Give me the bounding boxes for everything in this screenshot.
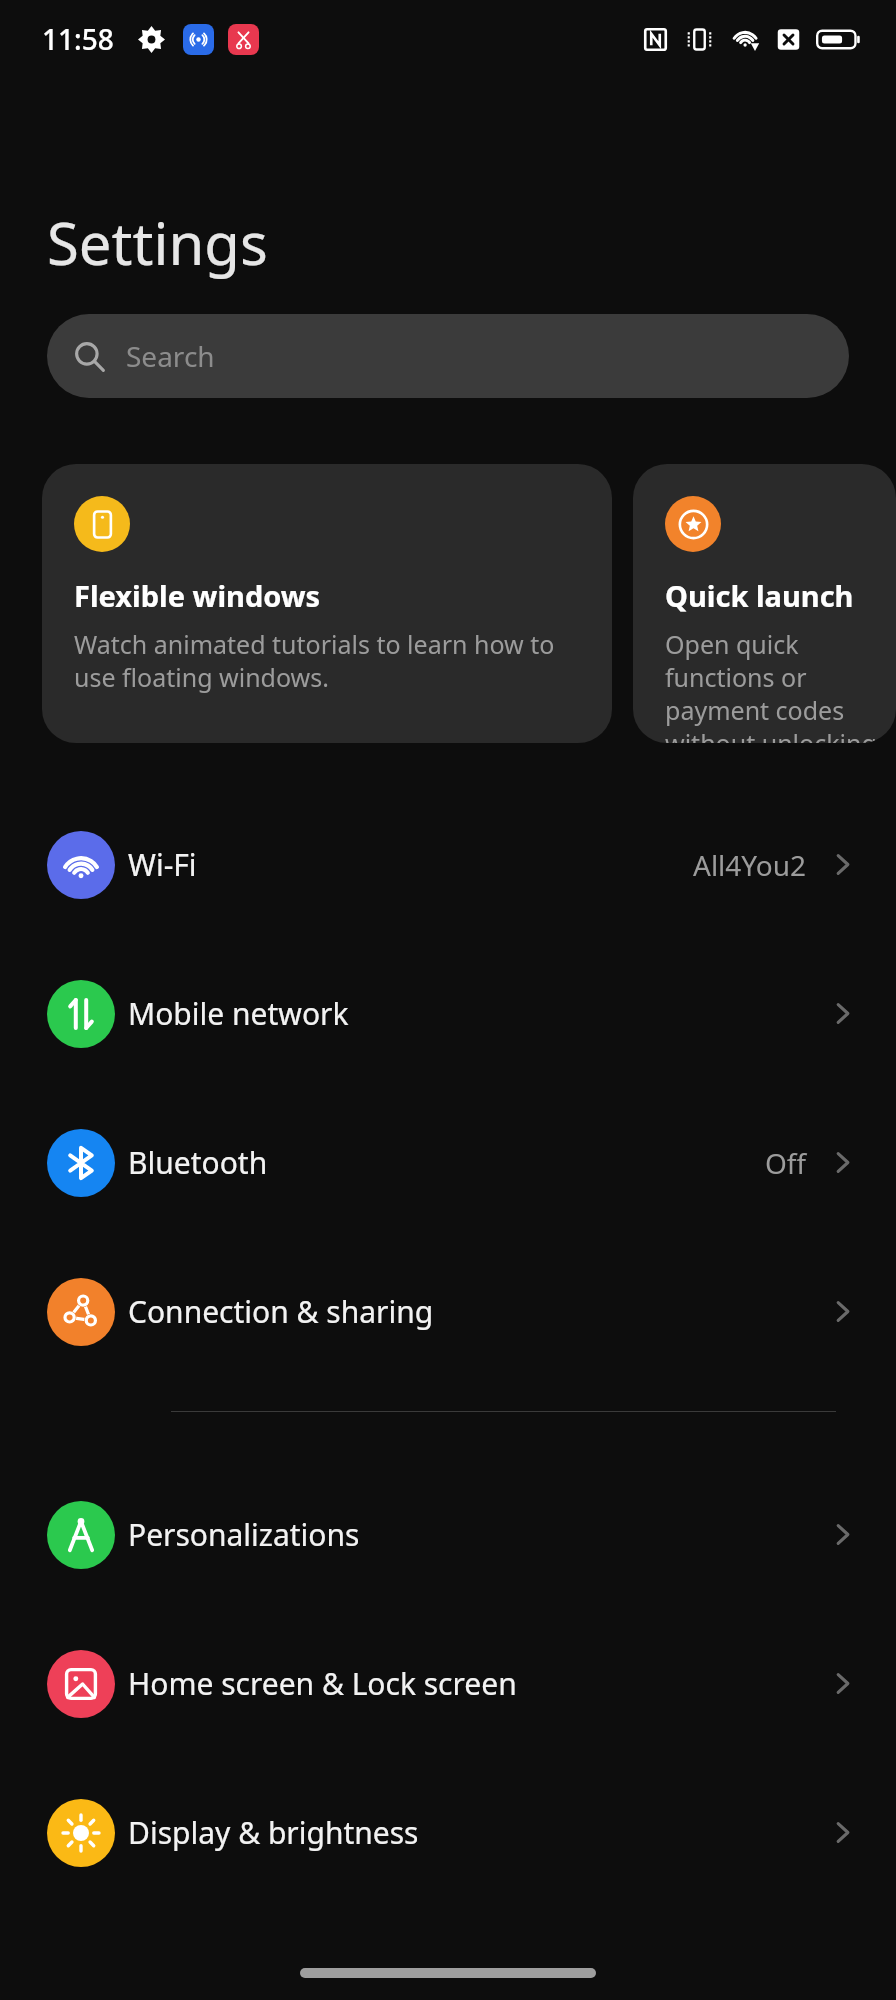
staticText: Off — [765, 1144, 807, 1182]
button[interactable]: Search — [47, 314, 849, 398]
button[interactable]: Wi-Fi — [0, 790, 896, 939]
staticText: Quick launch — [665, 576, 854, 615]
button[interactable]: Personalizations — [0, 1460, 896, 1609]
staticText: Wi-Fi — [128, 844, 693, 885]
staticText: Watch animated tutorials to learn how to… — [74, 627, 594, 694]
staticText: Open quick functions or payment codes wi… — [665, 627, 878, 743]
staticText: Connection & sharing — [128, 1291, 829, 1332]
staticText: Search — [126, 337, 215, 375]
button[interactable]: Display & brightness — [0, 1758, 896, 1907]
button[interactable]: Connection & sharing — [0, 1237, 896, 1386]
staticText: Bluetooth — [128, 1142, 765, 1183]
button[interactable]: Bluetooth — [0, 1088, 896, 1237]
button[interactable]: Flexible windows — [42, 464, 612, 743]
staticText: Display & brightness — [128, 1812, 829, 1853]
staticText: Settings — [47, 203, 268, 282]
button[interactable]: Home screen & Lock screen — [0, 1609, 896, 1758]
staticText: Home screen & Lock screen — [128, 1663, 829, 1704]
staticText: Personalizations — [128, 1514, 829, 1555]
button[interactable]: Mobile network — [0, 939, 896, 1088]
button[interactable]: Quick launch — [633, 464, 896, 743]
staticText: Mobile network — [128, 993, 829, 1034]
staticText: All4You2 — [693, 846, 807, 884]
staticText: 11:58 — [42, 20, 114, 58]
staticText: Flexible windows — [74, 576, 321, 615]
